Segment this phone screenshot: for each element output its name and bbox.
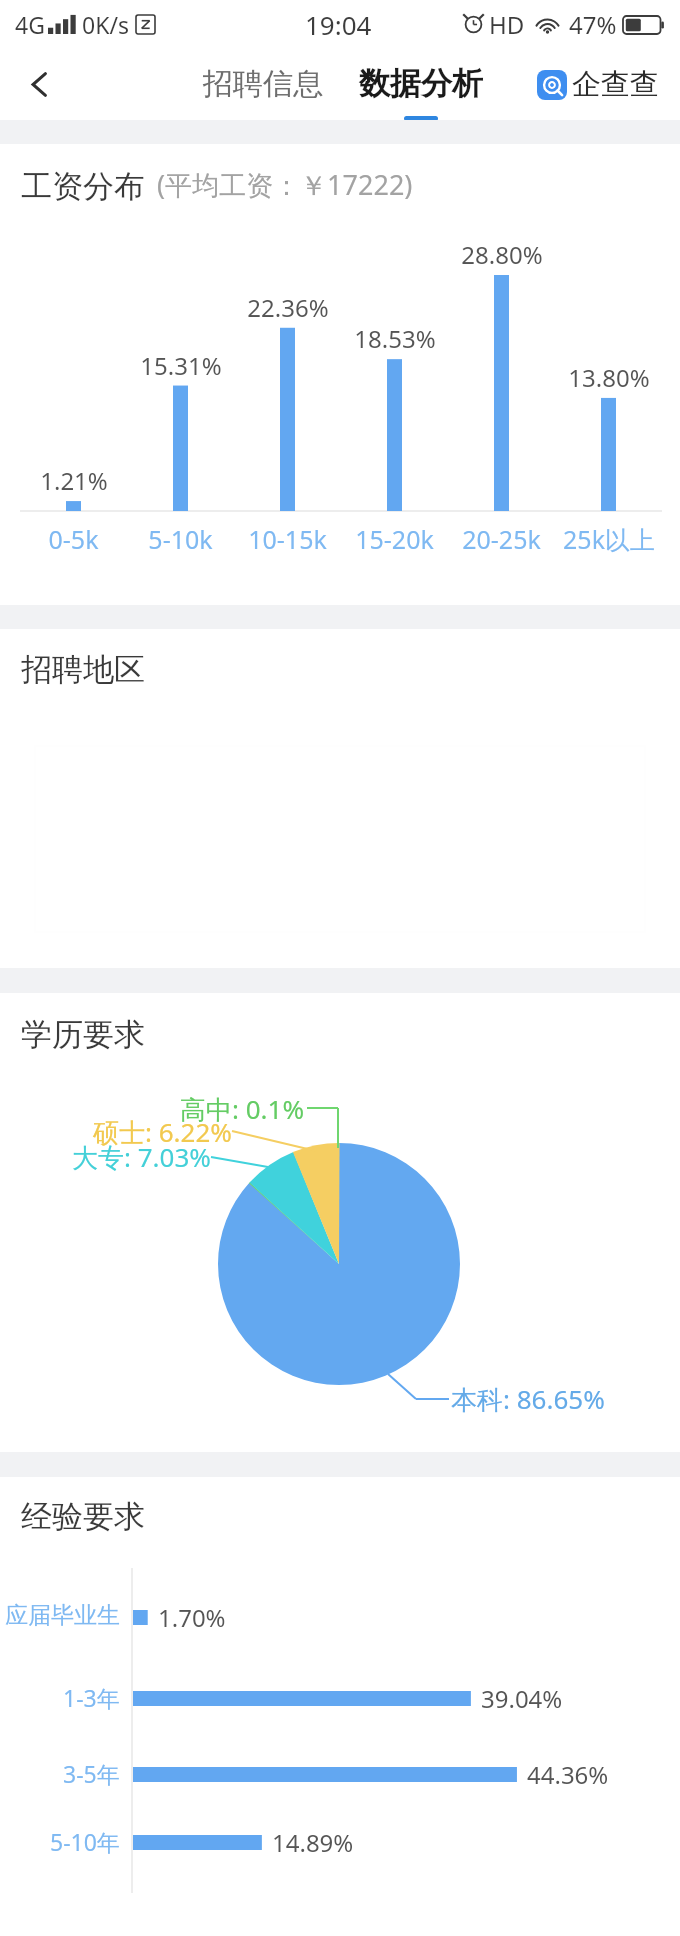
- staticText: 1.21%: [40, 464, 108, 497]
- staticText: 0-5k: [48, 522, 99, 556]
- staticText: HD: [489, 8, 525, 41]
- staticText: 15.31%: [140, 349, 222, 382]
- staticText: 应届毕业生: [5, 1601, 120, 1630]
- staticText: 3-5年: [63, 1758, 120, 1789]
- button[interactable]: 招聘信息: [197, 53, 329, 115]
- staticText: 0K/s: [82, 9, 129, 40]
- button[interactable]: Back: [10, 55, 68, 113]
- staticText: (平均工资：￥17222): [157, 166, 413, 203]
- staticText: 数据分析: [359, 64, 483, 103]
- staticText: 硕士: 6.22%: [93, 1114, 232, 1150]
- staticText: 1.70%: [158, 1601, 226, 1634]
- staticText: 学历要求: [21, 1015, 145, 1054]
- staticText: 28.80%: [461, 238, 543, 271]
- staticText: 25k以上: [563, 522, 655, 556]
- staticText: 13.80%: [568, 361, 650, 394]
- staticText: 大专: 7.03%: [72, 1139, 211, 1175]
- staticText: 5-10k: [148, 522, 213, 556]
- staticText: 44.36%: [527, 1758, 609, 1791]
- staticText: 招聘信息: [203, 65, 323, 103]
- staticText: 招聘地区: [21, 650, 145, 689]
- staticText: 22.36%: [247, 291, 329, 324]
- staticText: 14.89%: [272, 1826, 354, 1859]
- staticText: 15-20k: [355, 522, 434, 556]
- button[interactable]: 数据分析: [359, 64, 483, 121]
- staticText: 高中: 0.1%: [180, 1091, 305, 1127]
- staticText: 1-3年: [63, 1682, 120, 1713]
- staticText: 39.04%: [481, 1682, 563, 1715]
- staticText: 20-25k: [462, 522, 541, 556]
- staticText: 本科: 86.65%: [451, 1381, 605, 1417]
- staticText: 经验要求: [21, 1497, 145, 1536]
- staticText: 47%: [569, 8, 617, 41]
- staticText: 5-10年: [50, 1826, 120, 1857]
- staticText: 工资分布: [21, 167, 145, 206]
- staticText: 18.53%: [354, 322, 436, 355]
- staticText: 4G: [15, 9, 45, 40]
- staticText: 19:04: [305, 7, 372, 42]
- staticText: 10-15k: [248, 522, 327, 556]
- staticText: 企查查: [572, 66, 659, 103]
- button[interactable]: 企查查: [537, 66, 659, 103]
